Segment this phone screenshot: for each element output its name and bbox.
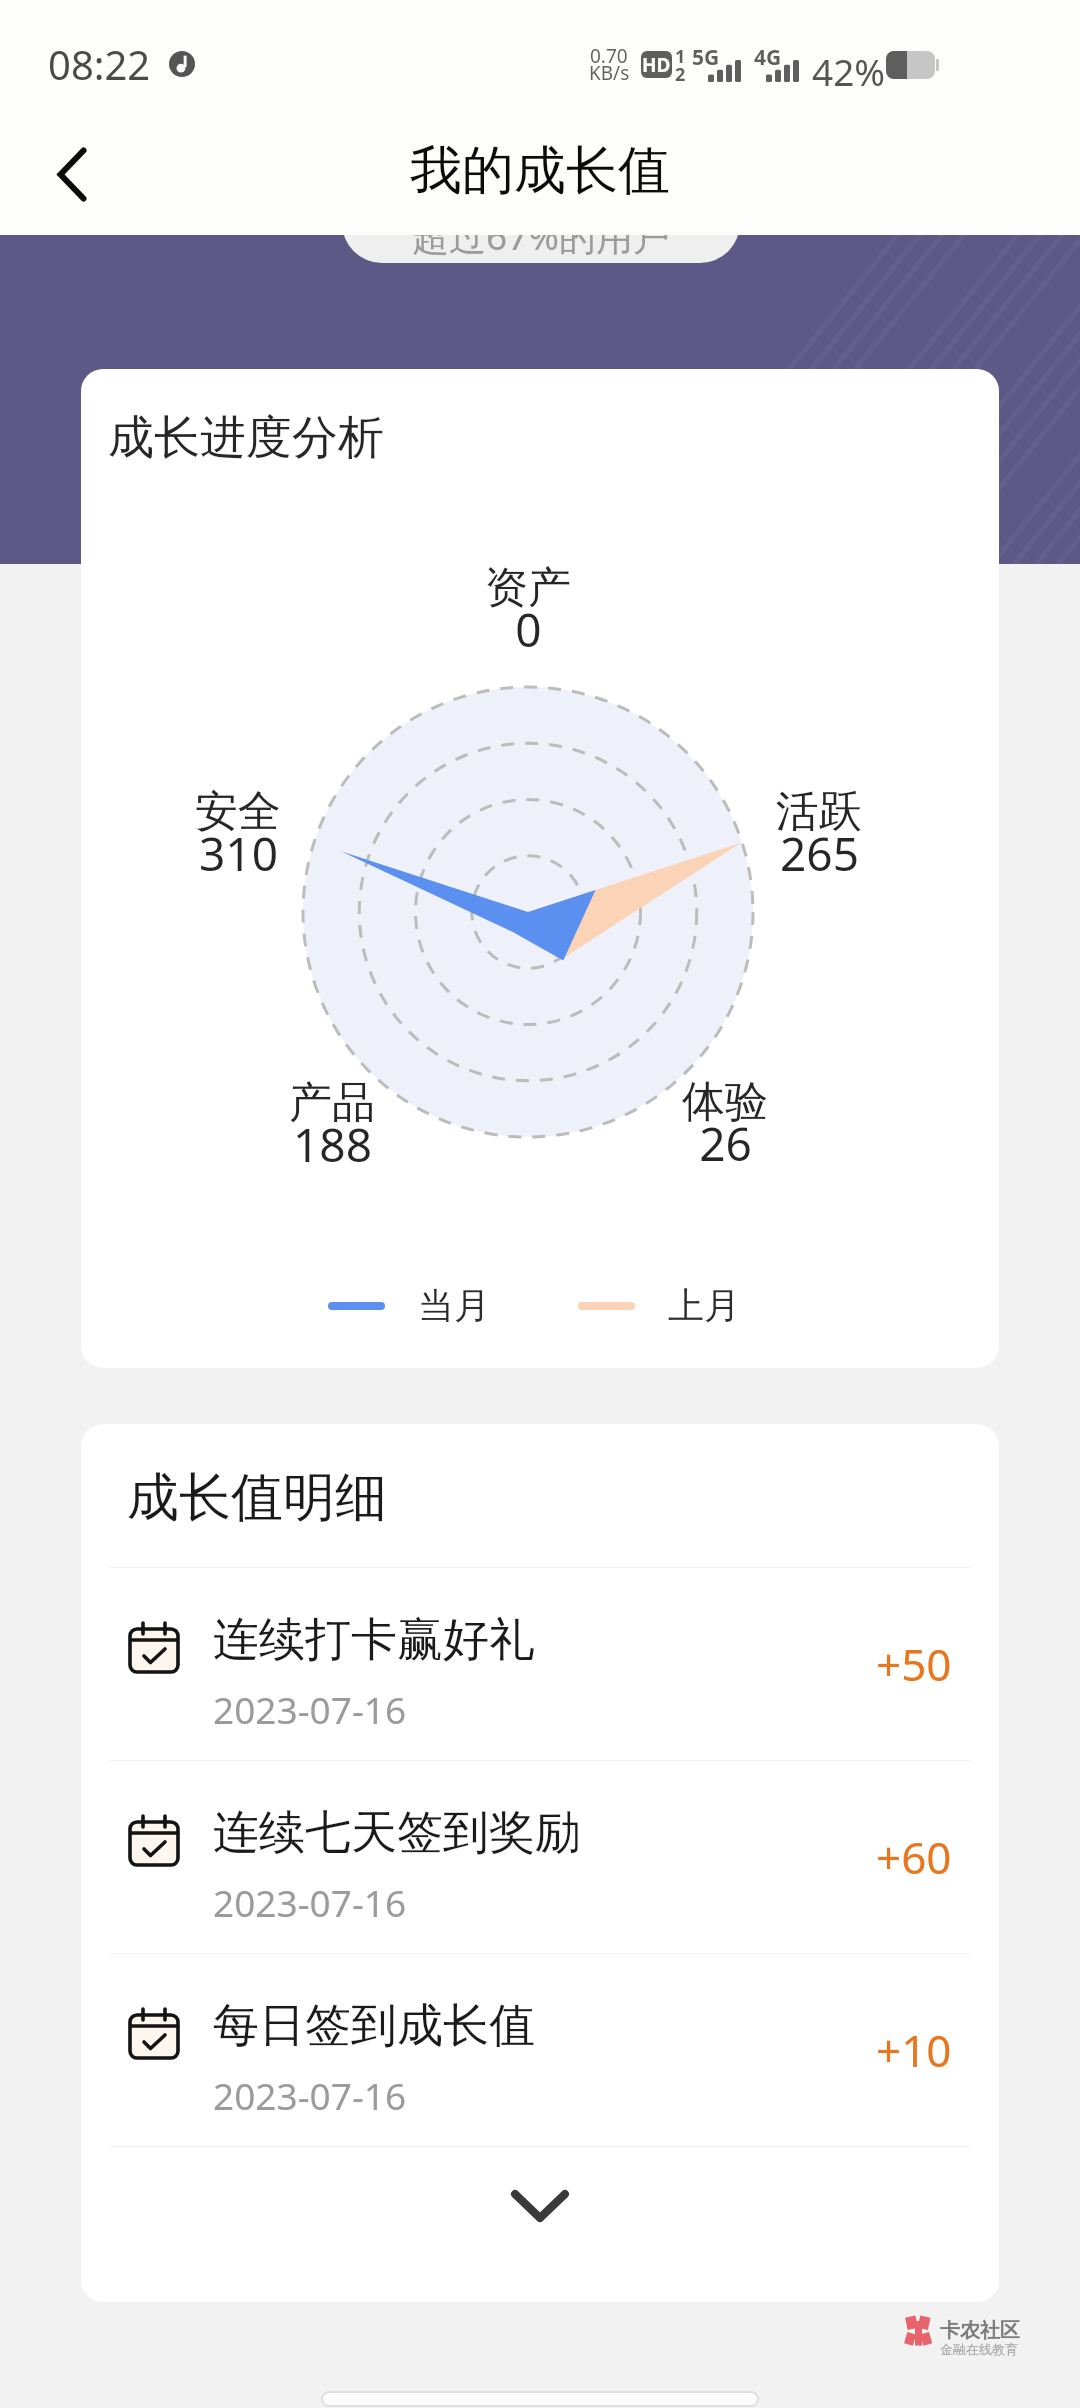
staticText: 连续打卡赢好礼 (213, 1611, 535, 1669)
staticText: 每日签到成长值 (213, 1997, 535, 2055)
staticText: 活跃 (776, 785, 862, 839)
staticText: 体验 (682, 1075, 768, 1129)
staticText: +10 (876, 2020, 952, 2080)
staticText: 310 (199, 822, 278, 885)
staticText: 265 (780, 822, 859, 885)
staticText: 42% (812, 46, 886, 96)
staticText: 安全 (195, 785, 281, 839)
staticText: 26 (699, 1112, 752, 1175)
staticText: 我的成长值 (410, 138, 670, 204)
staticText: KB/s (589, 60, 630, 86)
staticText: 5G (692, 43, 720, 72)
staticText: 188 (293, 1113, 372, 1176)
staticText: 卡农社区 (940, 2318, 1020, 2343)
staticText: HD (642, 52, 671, 78)
staticText: 1 (675, 44, 686, 69)
staticText: 金融在线教育 (940, 2341, 1018, 2357)
staticText: 2 (675, 62, 686, 87)
staticText: 0.70 (590, 43, 628, 69)
button[interactable]: Back (26, 128, 118, 220)
staticText: 0 (515, 598, 542, 661)
button[interactable]: 连续打卡赢好礼 (81, 1568, 999, 1760)
staticText: 2023-07-16 (213, 2070, 407, 2120)
staticText: 成长值明细 (127, 1465, 387, 1531)
staticText: 2023-07-16 (213, 1877, 407, 1927)
staticText: +50 (876, 1634, 952, 1694)
staticText: +60 (876, 1827, 952, 1887)
staticText: 上月 (668, 1283, 740, 1328)
button[interactable]: Show more (81, 2147, 999, 2265)
staticText: 08:22 (48, 37, 151, 91)
staticText: 产品 (289, 1076, 375, 1130)
staticText: 超过67%的用户 (412, 210, 671, 261)
staticText: 4G (754, 43, 782, 72)
staticText: 连续七天签到奖励 (213, 1804, 581, 1862)
staticText: 当月 (418, 1283, 490, 1328)
staticText: 成长进度分析 (108, 409, 384, 467)
button[interactable]: 每日签到成长值 (81, 1954, 999, 2146)
staticText: 资产 (485, 561, 571, 615)
staticText: 2023-07-16 (213, 1684, 407, 1734)
button[interactable]: 连续七天签到奖励 (81, 1761, 999, 1953)
